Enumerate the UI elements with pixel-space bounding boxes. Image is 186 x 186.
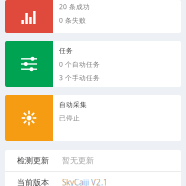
staticText: SkyCaiji V2.1 (62, 177, 108, 186)
staticText: 暂无更新 (62, 156, 94, 165)
staticText: 检测更新 (17, 156, 49, 165)
button[interactable]: 当前版本 (5, 172, 181, 186)
button[interactable]: 任务 (5, 41, 181, 87)
staticText: 已停止 (59, 114, 80, 122)
button[interactable]: 自动采集 (5, 95, 181, 141)
button[interactable]: 检测更新 (5, 150, 181, 171)
staticText: 20 条成功 (59, 2, 90, 11)
button[interactable]: 20 条成功 (5, 0, 181, 33)
staticText: 0 条失败 (59, 16, 86, 25)
staticText: 自动采集 (59, 101, 87, 109)
staticText: 3 个手动任务 (59, 73, 100, 82)
staticText: 当前版本 (17, 178, 49, 186)
staticText: 0 个自动任务 (59, 60, 100, 69)
staticText: 任务 (59, 47, 73, 55)
